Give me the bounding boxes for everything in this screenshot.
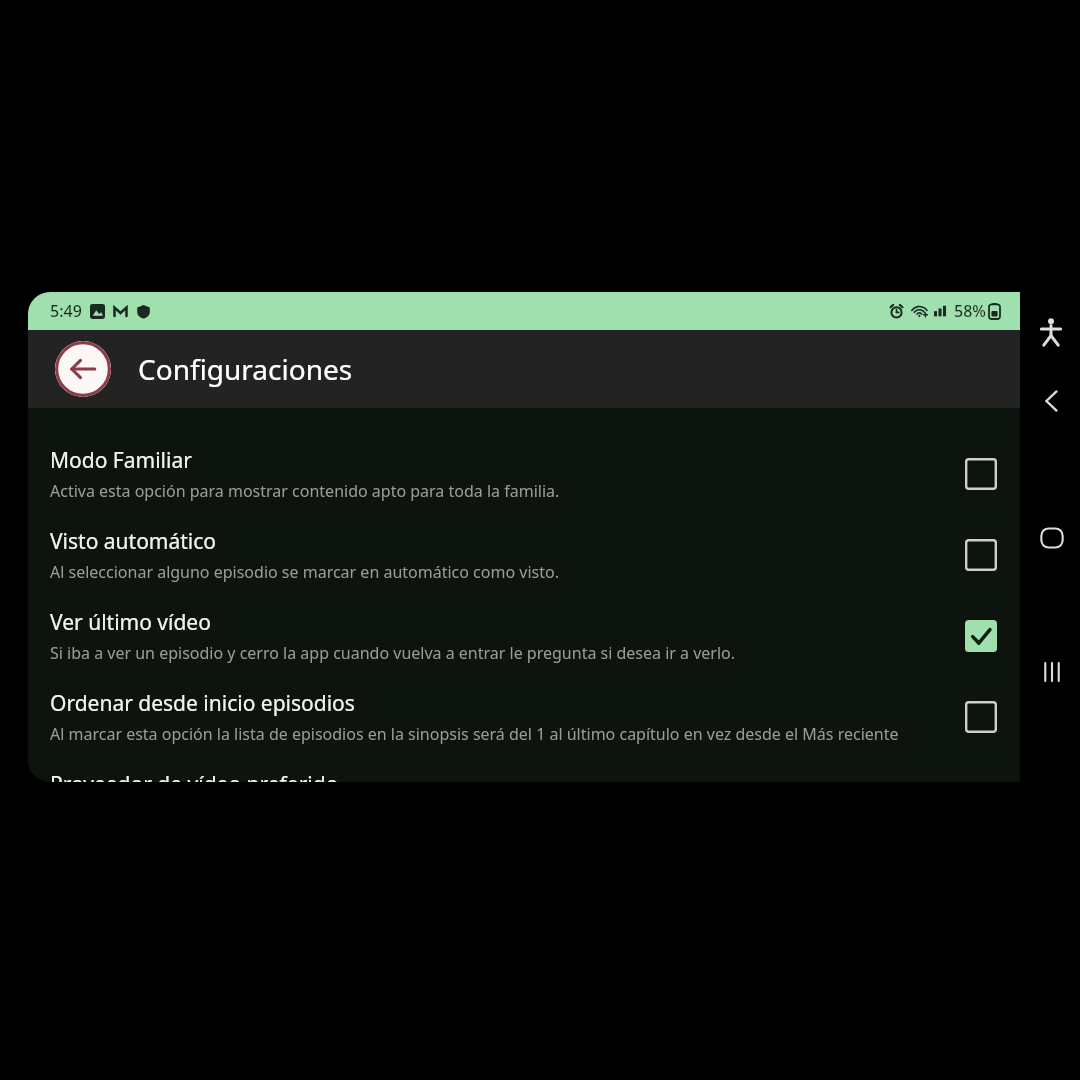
button[interactable]: Checked — [964, 619, 998, 653]
button[interactable]: Ver último vídeo — [28, 595, 1020, 676]
button[interactable]: Home — [1038, 524, 1066, 552]
button[interactable]: Back — [1038, 387, 1066, 415]
staticText: Ordenar desde inicio episodios — [50, 689, 355, 718]
staticText: Activa esta opción para mostrar contenid… — [50, 480, 560, 502]
staticText: Ver último vídeo — [50, 608, 211, 637]
button[interactable]: Ordenar desde inicio episodios — [28, 676, 1020, 757]
button[interactable]: Proveedor de vídeo preferido — [28, 770, 1020, 782]
button[interactable]: Unchecked — [964, 457, 998, 491]
button[interactable]: Visto automático — [28, 514, 1020, 595]
button[interactable]: Back — [55, 341, 111, 397]
button[interactable]: Accessibility — [1036, 317, 1066, 347]
button[interactable]: Unchecked — [964, 538, 998, 572]
staticText: Configuraciones — [138, 350, 353, 388]
button[interactable]: Modo Familiar — [28, 433, 1020, 514]
button[interactable]: Recents — [1038, 658, 1066, 686]
staticText: Visto automático — [50, 527, 217, 556]
staticText: 58% — [954, 300, 986, 322]
staticText: Al marcar esta opción la lista de episod… — [50, 723, 899, 745]
staticText: Proveedor de vídeo preferido — [50, 770, 339, 782]
staticText: 5:49 — [50, 300, 82, 322]
staticText: Modo Familiar — [50, 446, 192, 475]
button[interactable]: Unchecked — [964, 700, 998, 734]
staticText: Si iba a ver un episodio y cerro la app … — [50, 642, 736, 664]
staticText: Al seleccionar alguno episodio se marcar… — [50, 561, 559, 583]
